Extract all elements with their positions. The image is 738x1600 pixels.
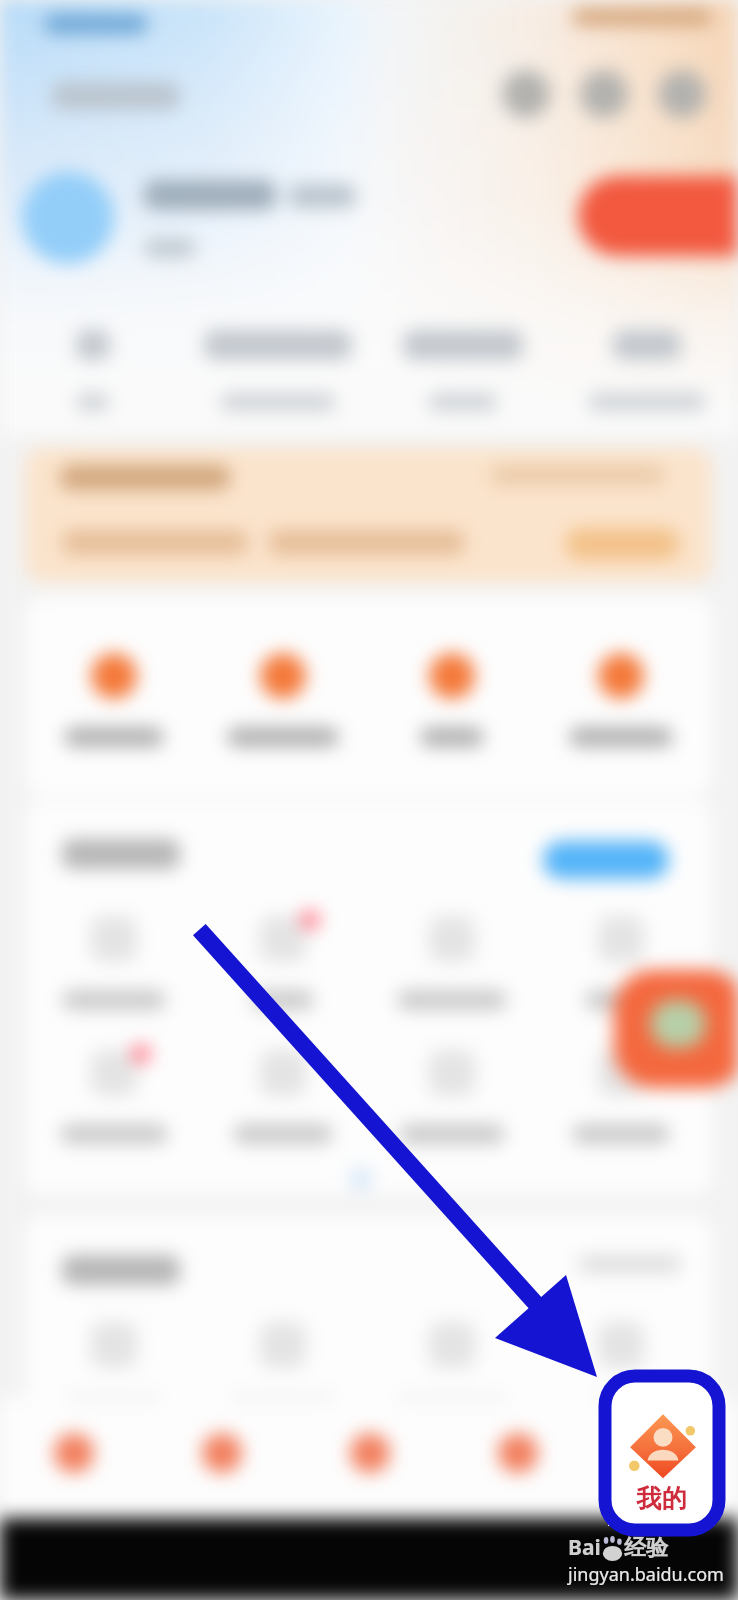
button[interactable] (198, 653, 367, 747)
button[interactable]: Membership banner (25, 448, 712, 582)
button[interactable] (370, 330, 555, 430)
button[interactable]: Home (0, 1433, 148, 1518)
button[interactable]: 我的 (608, 1379, 715, 1526)
button[interactable] (185, 330, 370, 430)
button[interactable]: View all (543, 841, 669, 879)
button[interactable]: Search (580, 70, 628, 118)
button[interactable] (536, 1050, 705, 1144)
button[interactable] (29, 1050, 198, 1144)
button[interactable] (367, 1050, 536, 1144)
button[interactable] (367, 916, 536, 1010)
button[interactable] (198, 1050, 367, 1144)
button[interactable]: Cart (444, 1433, 592, 1518)
staticText: 我的 (608, 1483, 715, 1514)
button[interactable]: Claim now (565, 528, 680, 560)
button[interactable] (198, 916, 367, 1010)
button[interactable] (367, 653, 536, 747)
button[interactable] (29, 1322, 198, 1416)
button[interactable] (536, 916, 705, 1010)
button[interactable] (367, 1322, 536, 1416)
button[interactable] (536, 653, 705, 747)
button[interactable]: Profile photo (22, 172, 114, 264)
button[interactable] (29, 916, 198, 1010)
button[interactable] (536, 1322, 705, 1416)
button[interactable] (198, 1322, 367, 1416)
button[interactable]: Settings (658, 70, 706, 118)
button[interactable]: Message (296, 1433, 444, 1518)
button[interactable] (0, 330, 185, 430)
button[interactable]: Mine (592, 1433, 738, 1518)
button[interactable] (555, 330, 738, 430)
staticText: 经验 (624, 1534, 668, 1562)
button[interactable] (29, 653, 198, 747)
button[interactable]: Promotion (614, 970, 738, 1088)
button[interactable]: Scan (502, 70, 550, 118)
staticText: jingyan.baidu.com (568, 1562, 724, 1587)
button[interactable]: Upgrade (578, 176, 738, 256)
button[interactable]: Discover (148, 1433, 296, 1518)
staticText: Bai (568, 1533, 601, 1562)
